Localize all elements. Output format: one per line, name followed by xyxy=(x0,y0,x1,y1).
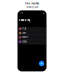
staticText: Dairy xyxy=(22,32,26,34)
staticText: Drinks xyxy=(22,41,27,43)
staticText: 9:41 xyxy=(19,12,23,14)
button[interactable]: Fruit xyxy=(18,27,46,31)
staticText: The Home xyxy=(24,2,39,5)
button[interactable]: Add list xyxy=(39,61,44,66)
staticText: Bakery xyxy=(22,36,28,39)
staticText: Fruit xyxy=(22,27,26,30)
staticText: Shopping app xyxy=(26,6,38,8)
button[interactable]: Drinks xyxy=(18,40,46,44)
button[interactable]: Bakery xyxy=(18,36,46,40)
button[interactable]: Dairy xyxy=(18,31,46,36)
staticText: Shopping xyxy=(19,19,31,22)
